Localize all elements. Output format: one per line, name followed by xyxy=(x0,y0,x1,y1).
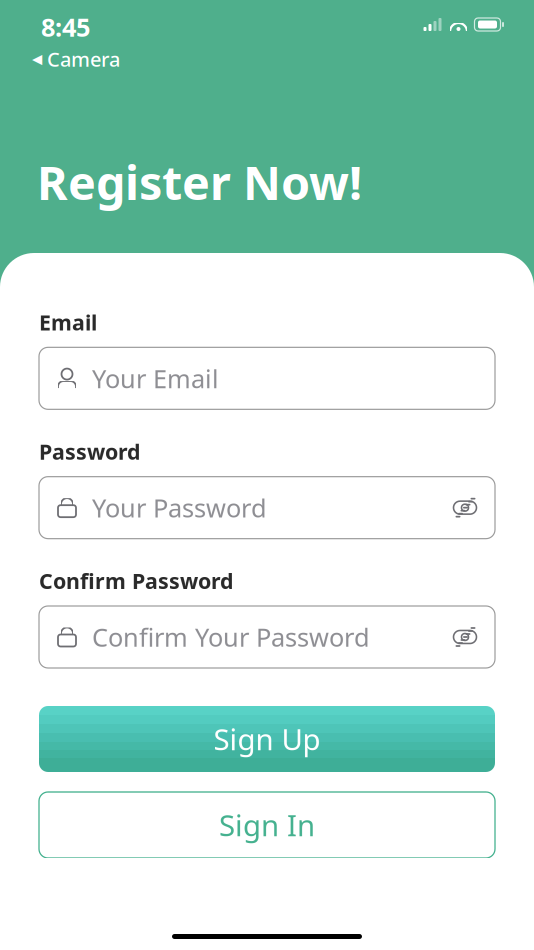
staticText: Sign Up xyxy=(213,719,320,758)
button[interactable]: Confirm Your Password xyxy=(39,606,495,668)
button[interactable]: Sign Up xyxy=(39,706,495,772)
staticText: Your Password xyxy=(92,491,267,524)
staticText: 8:45 xyxy=(41,10,90,44)
staticText: Camera xyxy=(47,46,120,72)
button[interactable]: Sign In xyxy=(39,792,495,858)
staticText: Confirm Your Password xyxy=(92,620,370,654)
staticText: Your Email xyxy=(92,361,219,395)
staticText: Password xyxy=(39,437,140,466)
staticText: Email xyxy=(39,308,97,336)
button[interactable]: Your Password xyxy=(39,477,495,539)
staticText: Register Now! xyxy=(37,151,362,213)
staticText: Sign In xyxy=(219,805,315,844)
button[interactable]: Your Email xyxy=(39,347,495,409)
staticText: ◀ xyxy=(32,51,42,66)
staticText: Confirm Password xyxy=(39,567,233,595)
